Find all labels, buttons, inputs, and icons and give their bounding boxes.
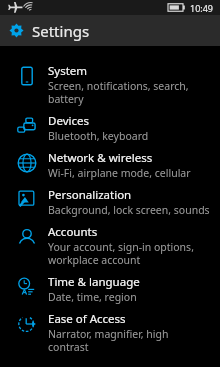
button[interactable]: Settings	[0, 15, 220, 46]
staticText: Your account, sign-in options, workplace…	[48, 240, 210, 267]
staticText: Wi-Fi, airplane mode, cellular	[48, 166, 191, 180]
other: Settings	[9, 23, 24, 38]
button[interactable]: Accounts	[0, 221, 220, 271]
button[interactable]: Personalization	[0, 184, 220, 221]
staticText: Date, time, region	[48, 290, 137, 304]
button[interactable]: Devices	[0, 110, 220, 147]
staticText: Bluetooth, keyboard	[48, 129, 149, 143]
button[interactable]: System	[0, 60, 220, 110]
staticText: Narrator, magnifier, high contrast	[48, 327, 210, 354]
button[interactable]: Time & language	[0, 271, 220, 308]
staticText: Accounts	[48, 224, 98, 240]
staticText: Background, lock screen, sounds	[48, 203, 210, 217]
staticText: Settings	[32, 21, 90, 41]
staticText: Ease of Access	[48, 311, 126, 327]
staticText: Network & wireless	[48, 150, 153, 166]
staticText: Time & language	[48, 274, 140, 290]
staticText: Screen, notifications, search, battery	[48, 79, 210, 106]
staticText: 10:49	[190, 2, 214, 14]
button[interactable]: Ease of Access	[0, 308, 220, 358]
staticText: Personalization	[48, 187, 132, 203]
button[interactable]: Network & wireless	[0, 147, 220, 184]
staticText: System	[48, 63, 88, 79]
staticText: Devices	[48, 113, 89, 129]
